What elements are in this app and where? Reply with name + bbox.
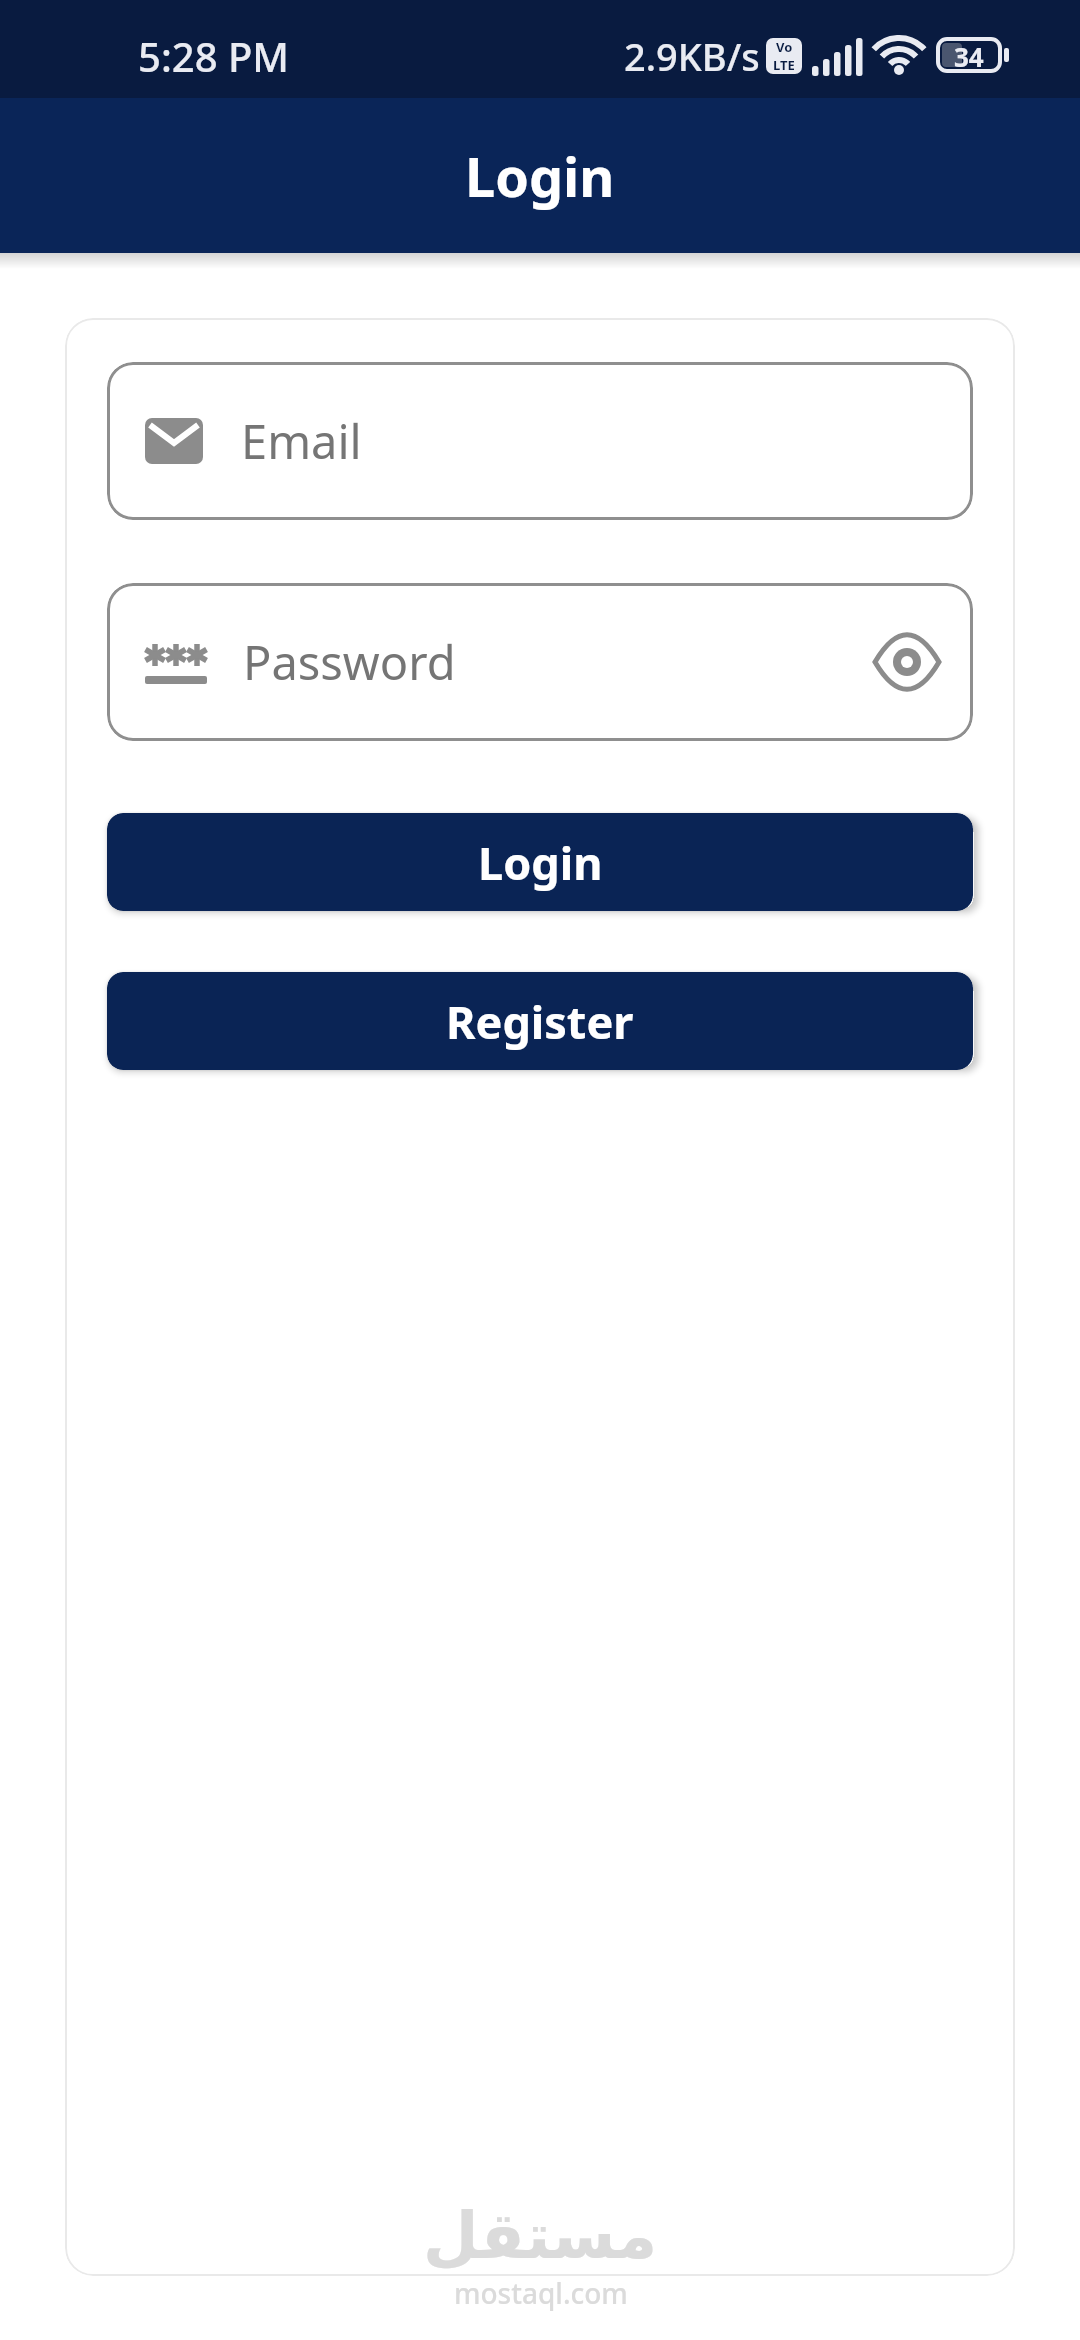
staticText: 2.9KB/s	[624, 30, 760, 82]
staticText: Email	[241, 409, 362, 473]
staticText: mostaql.com	[454, 2274, 628, 2312]
button[interactable]	[873, 636, 941, 688]
button[interactable]: Register	[107, 972, 973, 1070]
button[interactable]: Login	[107, 813, 973, 911]
button[interactable]: Email	[107, 362, 973, 520]
staticText: Login	[465, 139, 615, 213]
staticText: Vo	[776, 38, 793, 56]
staticText: Password	[243, 630, 456, 694]
staticText: 34	[954, 39, 984, 74]
staticText: مستقل	[423, 2199, 658, 2274]
staticText: Register	[446, 991, 634, 1052]
button[interactable]: Password	[107, 583, 973, 741]
staticText: 5:28 PM	[138, 29, 290, 83]
staticText: LTE	[773, 56, 795, 74]
staticText: Login	[478, 832, 603, 893]
